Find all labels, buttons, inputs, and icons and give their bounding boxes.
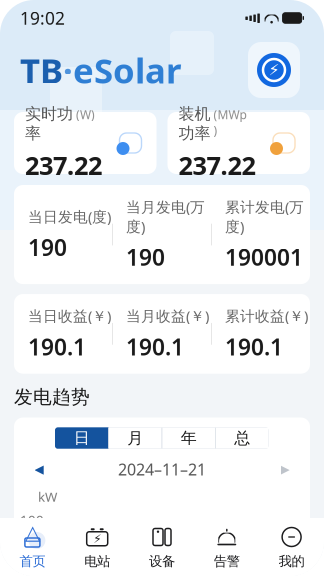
staticText: 电站 — [84, 553, 110, 569]
staticText: 告警 — [214, 553, 240, 569]
staticText: (W) — [76, 107, 95, 122]
staticText: 首页 — [19, 553, 45, 569]
staticText: (MWp) — [213, 107, 246, 138]
staticText: 190.1 — [28, 331, 86, 362]
staticText: 发电趋势 — [14, 386, 90, 408]
staticText: eSolar — [73, 47, 181, 93]
button[interactable]: 装机功率 — [167, 112, 310, 174]
button[interactable]: 月 — [108, 428, 162, 449]
staticText: ⚡︎ — [93, 532, 101, 545]
staticText: 装机功率 — [178, 104, 210, 143]
button[interactable]: 日 — [55, 428, 108, 449]
staticText: ⚡︎ — [268, 61, 279, 79]
staticText: 累计收益(￥) — [225, 306, 308, 326]
staticText: 190001 — [225, 242, 303, 272]
staticText: △ — [25, 521, 40, 544]
staticText: 190.1 — [225, 331, 283, 362]
staticText: 237.22 — [25, 148, 102, 182]
staticText: 实时功率 — [25, 104, 73, 143]
staticText: 月 — [127, 428, 143, 448]
staticText: 100 — [20, 511, 44, 528]
button[interactable]: 总 — [215, 428, 269, 449]
button[interactable]: 实时功率 — [14, 112, 156, 174]
button[interactable]: 当日发电(度) — [14, 207, 112, 262]
button[interactable]: 设备 — [130, 525, 194, 569]
staticText: 当月收益(￥) — [126, 306, 209, 326]
staticText: 当日收益(￥) — [28, 306, 111, 326]
staticText: TB — [20, 47, 63, 93]
staticText: 190 — [28, 232, 67, 262]
staticText: 190.1 — [126, 331, 184, 362]
button[interactable]: ⚡︎ — [65, 525, 130, 569]
staticText: 年 — [181, 428, 197, 448]
staticText: kW — [38, 488, 57, 505]
button[interactable]: 年 — [162, 428, 215, 449]
staticText: 2024–11–21 — [118, 459, 206, 480]
button[interactable]: 我的 — [259, 525, 324, 569]
button[interactable]: Previous day — [26, 459, 52, 479]
staticText: 时间：2024–11–21 15:20 — [168, 553, 272, 576]
button[interactable]: 累计发电(万度) — [212, 197, 310, 272]
staticText: ◀ — [34, 462, 43, 476]
staticText: 80 — [28, 542, 44, 559]
staticText: 日 — [74, 428, 90, 448]
staticText: 当月发电(万度) — [126, 197, 205, 236]
staticText: 当日发电(度) — [28, 207, 111, 226]
staticText: 累计发电(万度) — [225, 197, 304, 236]
staticText: 19:02 — [20, 6, 65, 29]
button[interactable]: 累计收益(￥) — [212, 306, 310, 362]
button[interactable]: 当月收益(￥) — [113, 306, 211, 362]
staticText: ▶ — [280, 462, 289, 476]
staticText: 190 — [126, 242, 165, 272]
staticText: 我的 — [279, 553, 305, 569]
button[interactable]: 当日收益(￥) — [14, 306, 112, 362]
staticText: · — [63, 47, 73, 93]
button[interactable]: 告警 — [194, 525, 259, 569]
staticText: 总 — [234, 428, 250, 448]
button[interactable]: Next day — [272, 459, 298, 479]
button[interactable]: △ — [0, 525, 65, 569]
staticText: 设备 — [149, 553, 175, 569]
button[interactable]: 当月发电(万度) — [113, 197, 211, 272]
staticText: 237.22 — [178, 148, 255, 182]
